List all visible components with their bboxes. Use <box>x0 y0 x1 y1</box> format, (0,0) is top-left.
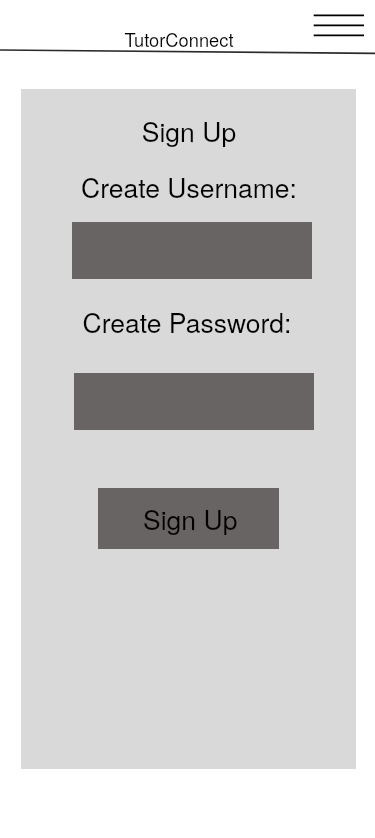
staticText: Create Password: <box>27 303 347 343</box>
button[interactable]: Sign Up <box>98 488 279 549</box>
staticText: Sign Up <box>29 112 349 152</box>
staticText: Create Username: <box>29 168 349 208</box>
staticText: Sign Up <box>143 500 238 538</box>
button[interactable]: Open navigation menu <box>307 8 371 43</box>
staticText: TutorConnect <box>19 26 339 52</box>
